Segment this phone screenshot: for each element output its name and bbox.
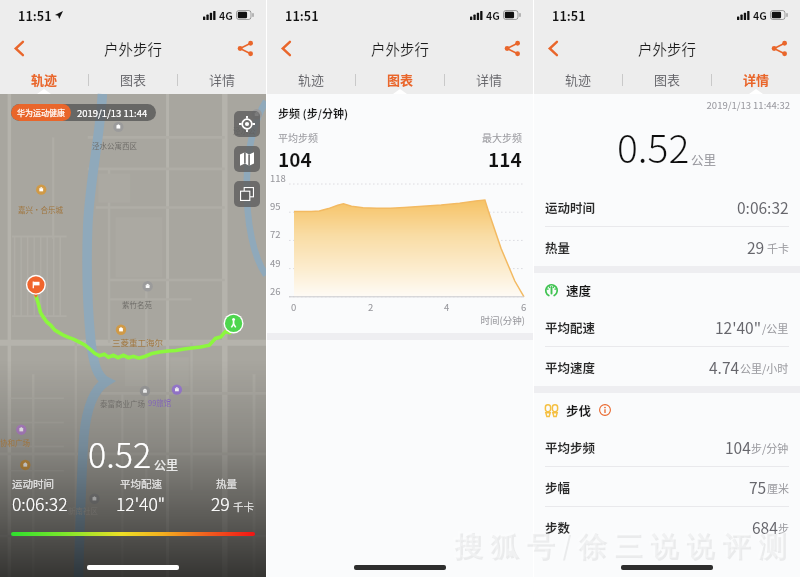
- staticText: 4G: [486, 8, 500, 23]
- button[interactable]: 运动时间: [534, 187, 800, 226]
- staticText: 步/分钟: [751, 440, 789, 456]
- button[interactable]: Locate: [234, 111, 260, 137]
- staticText: 轨迹: [298, 70, 325, 89]
- staticText: 0:06:32: [737, 196, 789, 218]
- button[interactable]: Info: [599, 404, 611, 416]
- staticText: 泾水公寓西区: [92, 140, 137, 151]
- staticText: 72: [270, 227, 281, 241]
- staticText: 步: [778, 520, 789, 536]
- staticText: 厘米: [767, 480, 789, 496]
- button[interactable]: 步数: [534, 507, 800, 546]
- staticText: 千卡: [233, 499, 254, 514]
- staticText: 轨迹: [31, 70, 58, 89]
- staticText: 11:51: [285, 6, 319, 24]
- staticText: 详情: [209, 70, 236, 89]
- staticText: 95: [270, 199, 281, 213]
- staticText: 75: [749, 476, 767, 498]
- staticText: 99旅馆: [148, 397, 172, 408]
- staticText: 嘉兴·合乐城: [18, 204, 63, 215]
- staticText: 公里: [691, 150, 717, 168]
- button[interactable]: Share: [758, 30, 800, 66]
- button[interactable]: 图表: [89, 66, 177, 94]
- button[interactable]: Back: [0, 30, 38, 66]
- staticText: 搜狐号/徐三说说评测: [455, 527, 796, 565]
- staticText: /公里: [762, 320, 789, 336]
- staticText: 热量: [216, 476, 237, 491]
- button[interactable]: Share: [224, 30, 266, 66]
- staticText: 步数: [545, 518, 571, 536]
- staticText: 详情: [743, 70, 770, 89]
- button[interactable]: 图表: [356, 66, 444, 94]
- staticText: 紫竹名苑: [122, 299, 152, 310]
- button[interactable]: 图表: [623, 66, 711, 94]
- button[interactable]: Map type: [234, 181, 260, 207]
- staticText: 新南社区: [68, 505, 98, 516]
- staticText: 最大步频: [482, 130, 522, 144]
- staticText: 图表: [654, 70, 681, 89]
- staticText: 协和广场: [0, 437, 30, 448]
- button[interactable]: 详情: [445, 66, 533, 94]
- staticText: 0.52: [88, 429, 152, 478]
- staticText: 公里: [154, 456, 179, 473]
- staticText: 4.74: [709, 356, 740, 378]
- staticText: 轨迹: [565, 70, 592, 89]
- staticText: 平均配速: [545, 318, 596, 336]
- staticText: 运动时间: [12, 476, 54, 491]
- staticText: 2019/1/13 11:44:32: [534, 98, 790, 112]
- button[interactable]: Back: [534, 30, 572, 66]
- button[interactable]: 轨迹: [0, 66, 88, 94]
- staticText: 0:06:32: [12, 491, 68, 516]
- staticText: 公里/小时: [740, 360, 789, 376]
- staticText: 0: [291, 300, 297, 314]
- staticText: 118: [270, 171, 286, 185]
- staticText: 0.52: [617, 118, 690, 174]
- staticText: 平均步频: [278, 130, 318, 144]
- staticText: 12'40": [715, 316, 762, 338]
- staticText: 12'40": [116, 491, 166, 516]
- staticText: 2019/1/13 11:44: [77, 106, 148, 120]
- staticText: 步幅: [545, 478, 571, 496]
- staticText: 户外步行: [371, 38, 429, 59]
- staticText: 步频 (步/分钟): [278, 105, 349, 121]
- staticText: 运动时间: [545, 198, 596, 216]
- staticText: 4: [444, 300, 450, 314]
- button[interactable]: 平均速度: [534, 347, 800, 386]
- button[interactable]: Map layers: [234, 146, 260, 172]
- staticText: 时间(分钟): [267, 313, 525, 327]
- staticText: 速度: [566, 281, 592, 299]
- button[interactable]: Back: [267, 30, 305, 66]
- staticText: 平均步频: [545, 438, 596, 456]
- staticText: 104: [278, 145, 312, 173]
- button[interactable]: 平均步频: [534, 427, 800, 466]
- staticText: 49: [270, 256, 281, 270]
- staticText: 步伐: [566, 401, 592, 419]
- button[interactable]: 平均配速: [534, 307, 800, 346]
- staticText: 29: [747, 236, 765, 258]
- staticText: 搜狐号/徐三说说评测: [453, 525, 794, 563]
- button[interactable]: 轨迹: [534, 66, 622, 94]
- staticText: 114: [488, 145, 522, 173]
- button[interactable]: 热量: [534, 227, 800, 266]
- staticText: 2: [368, 300, 374, 314]
- staticText: 详情: [476, 70, 503, 89]
- button[interactable]: 轨迹: [267, 66, 355, 94]
- button[interactable]: 详情: [178, 66, 266, 94]
- button[interactable]: Share: [491, 30, 533, 66]
- staticText: 26: [270, 284, 281, 298]
- staticText: 684: [752, 516, 778, 538]
- staticText: 热量: [545, 238, 571, 256]
- staticText: 104: [725, 436, 751, 458]
- staticText: 图表: [387, 70, 414, 89]
- staticText: 平均速度: [545, 358, 596, 376]
- staticText: 三菱重工海尔: [112, 336, 164, 348]
- staticText: 4G: [219, 8, 233, 23]
- staticText: 华为运动健康: [17, 107, 65, 119]
- staticText: 平均配速: [120, 476, 162, 491]
- staticText: 泾水公: [233, 125, 256, 136]
- button[interactable]: 步幅: [534, 467, 800, 506]
- staticText: 29: [211, 491, 230, 516]
- staticText: 千卡: [767, 240, 789, 256]
- button[interactable]: 详情: [712, 66, 800, 94]
- staticText: 户外步行: [638, 38, 696, 59]
- staticText: 4G: [753, 8, 767, 23]
